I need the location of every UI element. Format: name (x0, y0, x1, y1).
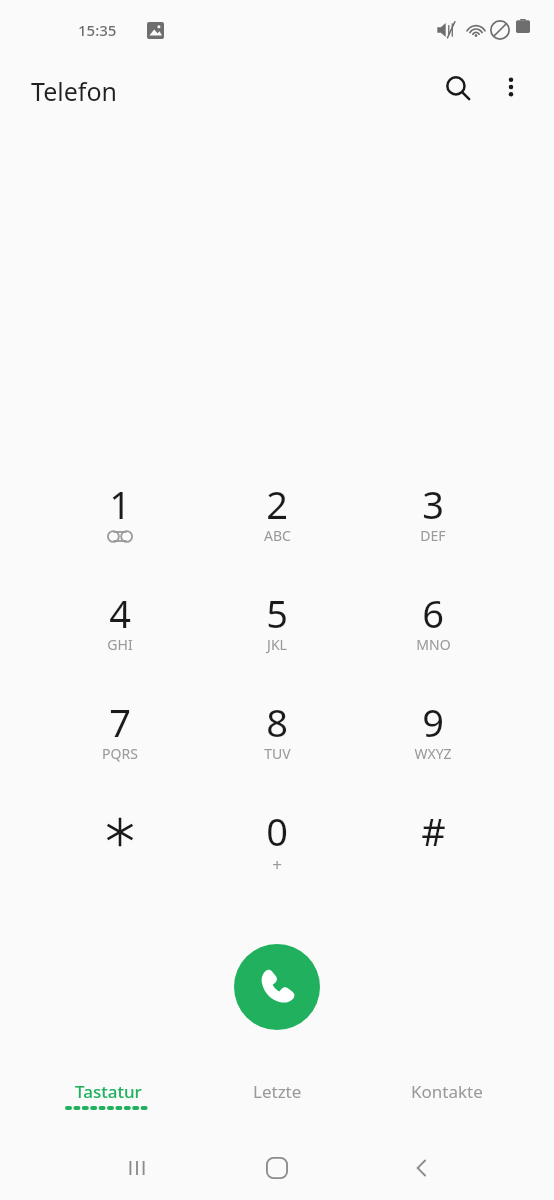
button[interactable]: 0 (202, 805, 352, 910)
staticText: 4 (109, 587, 131, 639)
button[interactable]: Startbildschirm (240, 1136, 314, 1200)
staticText: 5 (266, 587, 288, 639)
button[interactable]: 7 (45, 696, 195, 801)
button[interactable]: Weitere Optionen (488, 64, 534, 110)
staticText: 0 (266, 805, 288, 857)
staticText: MNO (416, 635, 451, 654)
staticText: TUV (264, 744, 291, 763)
button[interactable]: 8 (202, 696, 352, 801)
staticText: PQRS (102, 744, 138, 763)
button[interactable]: 6 (358, 587, 508, 692)
staticText: GHI (107, 635, 133, 654)
button[interactable]: Anrufen (234, 944, 320, 1030)
staticText: JKL (267, 635, 287, 654)
button[interactable]: 3 (358, 478, 508, 583)
staticText: + (272, 853, 282, 876)
staticText: Letzte (253, 1080, 302, 1103)
button[interactable]: 4 (45, 587, 195, 692)
staticText: 3 (422, 478, 444, 530)
button[interactable]: Letzte Apps (100, 1136, 174, 1200)
button[interactable]: Zurück (385, 1136, 459, 1200)
staticText: WXYZ (414, 744, 452, 763)
staticText: 9 (422, 696, 444, 748)
staticText: Tastatur (75, 1080, 142, 1103)
button[interactable]: Letzte (197, 1064, 357, 1120)
staticText: 1 (109, 478, 131, 530)
button[interactable]: Stern (45, 805, 195, 910)
staticText: 6 (422, 587, 444, 639)
staticText: Kontakte (411, 1080, 483, 1103)
button[interactable]: 2 (202, 478, 352, 583)
button[interactable]: Tastatur (28, 1064, 188, 1120)
staticText: Telefon (31, 74, 117, 108)
staticText: # (421, 805, 446, 857)
staticText: ABC (264, 526, 291, 545)
button[interactable]: Raute (358, 805, 508, 910)
staticText: DEF (420, 526, 446, 545)
staticText: 15:35 (78, 20, 117, 40)
button[interactable]: Kontakte (367, 1064, 527, 1120)
button[interactable]: 9 (358, 696, 508, 801)
button[interactable]: 5 (202, 587, 352, 692)
staticText: 8 (266, 696, 288, 748)
button[interactable]: Suchen (434, 64, 482, 112)
staticText: 7 (109, 696, 131, 748)
button[interactable]: 1 (45, 478, 195, 583)
staticText: 2 (266, 478, 288, 530)
